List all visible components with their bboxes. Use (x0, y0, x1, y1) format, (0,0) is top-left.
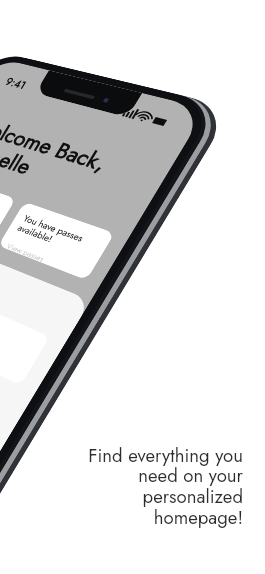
staticText: Rewards (2) (33, 230, 94, 247)
staticText: 0 (43, 273, 52, 293)
staticText: View passes (139, 190, 181, 200)
button[interactable]: 0 (33, 263, 227, 317)
button[interactable]: You have passes available! (130, 148, 229, 200)
staticText: Welcome Back, Michelle (33, 69, 185, 130)
button[interactable]: 0 (21, 148, 120, 200)
staticText: Find everything you need on your persona… (58, 442, 243, 531)
staticText: You have passes available! (139, 157, 205, 182)
